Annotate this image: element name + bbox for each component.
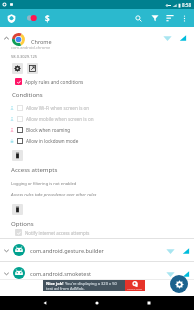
button[interactable]: Applications (2, 9, 20, 27)
button[interactable]: Nice job! (43, 280, 125, 291)
button[interactable]: Network (23, 9, 41, 27)
staticText: 58.0.3029.125 (11, 54, 38, 59)
staticText: 8:58 (182, 2, 192, 8)
button[interactable]: com.android.smoketest (0, 262, 194, 284)
staticText: AdMob by Google (127, 288, 143, 290)
button[interactable]: Filter (148, 11, 162, 25)
button[interactable]: Collapse (1, 33, 12, 44)
staticText: Block when roaming (26, 127, 71, 133)
button[interactable]: AdMob by Google (125, 280, 145, 291)
staticText: com.android.smoketest (30, 270, 166, 277)
staticText: Options (11, 219, 34, 227)
staticText: Allow Wi-Fi when screen is on (26, 105, 90, 111)
staticText: You're displaying a 320 x 50 (65, 281, 117, 286)
staticText: com.android.gesture.builder (30, 247, 166, 254)
staticText: Notify internet access attempts (25, 230, 90, 236)
staticText: Allow mobile when screen is on (26, 116, 94, 122)
button[interactable]: Allow in lockdown mode (0, 135, 194, 146)
button[interactable]: Search (131, 11, 145, 25)
button[interactable]: Back (38, 296, 52, 310)
staticText: test ad from AdMob. (46, 286, 85, 291)
staticText: $ (45, 13, 50, 24)
staticText: Allow in lockdown mode (26, 138, 79, 144)
button[interactable]: More options (178, 12, 191, 25)
button[interactable]: Launch app (27, 63, 38, 74)
staticText: Access rules take precedence over other … (11, 191, 97, 197)
staticText: Conditions (12, 90, 43, 98)
button[interactable]: Notify internet access attempts (15, 227, 194, 238)
staticText: Nice job! (46, 281, 65, 286)
staticText: Access attempts (11, 165, 58, 173)
button[interactable]: com.android.gesture.builder (0, 239, 194, 261)
button[interactable]: Clear log (12, 204, 23, 215)
button[interactable]: Allow mobile when screen is on (0, 113, 194, 124)
staticText: Logging or filtering is not enabled (11, 181, 77, 187)
staticText: Apply rules and conditions (25, 79, 84, 85)
button[interactable]: Block when roaming (0, 124, 194, 135)
button[interactable]: Recents (142, 296, 156, 310)
staticText: com.android.chrome (11, 45, 51, 50)
button[interactable]: App settings (12, 63, 23, 74)
button[interactable]: Apply rules and conditions (15, 76, 194, 87)
button[interactable]: Allow Wi-Fi when screen is on (0, 102, 194, 113)
button[interactable]: Settings (170, 275, 188, 293)
staticText: Chrome (31, 38, 52, 45)
button[interactable]: Sort (163, 11, 177, 25)
button[interactable]: Data usage (38, 9, 56, 27)
button[interactable]: Home (90, 296, 104, 310)
button[interactable]: Clear log (12, 150, 23, 161)
